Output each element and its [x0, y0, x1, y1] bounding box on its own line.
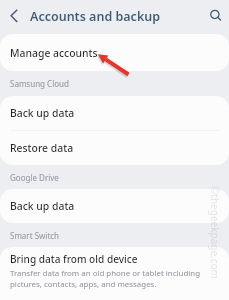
staticText: Manage accounts: [10, 46, 98, 60]
button[interactable]: Back up data: [0, 189, 229, 223]
staticText: Bring data from old device: [10, 252, 138, 266]
button[interactable]: Restore data: [0, 131, 229, 165]
staticText: ©thegeekpage.com: [208, 186, 222, 279]
staticText: Back up data: [10, 199, 75, 213]
button[interactable]: Manage accounts: [0, 34, 229, 71]
button[interactable]: Back up data: [0, 96, 229, 130]
button[interactable]: Back: [2, 4, 26, 28]
button[interactable]: Search: [204, 4, 228, 28]
staticText: Restore data: [10, 141, 74, 155]
staticText: Transfer data from an old phone or table…: [10, 268, 201, 289]
staticText: Back up data: [10, 106, 75, 120]
staticText: Samsung Cloud: [10, 78, 69, 89]
button[interactable]: Bring data from old device: [0, 247, 229, 300]
staticText: Accounts and backup: [30, 8, 161, 25]
staticText: Smart Switch: [10, 230, 60, 241]
staticText: Google Drive: [10, 172, 59, 183]
